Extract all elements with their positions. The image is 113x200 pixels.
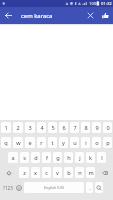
staticText: 01:32 — [101, 1, 112, 7]
staticText: j — [79, 154, 81, 162]
button[interactable]: 4 — [37, 122, 46, 133]
staticText: b — [67, 169, 71, 177]
staticText: cem karaca — [21, 12, 83, 20]
button[interactable]: 5 — [48, 122, 57, 133]
staticText: 4 — [40, 124, 44, 132]
staticText: ?123 — [3, 185, 13, 191]
staticText: x — [34, 169, 37, 177]
button[interactable]: n — [75, 167, 84, 178]
staticText: q — [4, 139, 8, 147]
staticText: p — [106, 139, 110, 147]
button[interactable]: v — [53, 167, 62, 178]
staticText: e — [28, 139, 32, 147]
staticText: 9 — [95, 124, 99, 132]
button[interactable]: w — [13, 137, 23, 148]
staticText: y — [62, 139, 65, 147]
button[interactable]: Emoji — [15, 180, 23, 195]
staticText: d — [34, 154, 38, 162]
staticText: g — [56, 154, 60, 162]
button[interactable]: b — [64, 167, 73, 178]
button[interactable]: o — [92, 137, 101, 148]
staticText: h — [67, 154, 71, 162]
button[interactable]: English (US) — [24, 182, 84, 193]
staticText: v — [56, 169, 59, 177]
button[interactable]: 9 — [92, 122, 101, 133]
staticText: 7 — [73, 124, 77, 132]
button[interactable]: . — [86, 182, 93, 193]
button[interactable]: 6 — [59, 122, 68, 133]
staticText: t — [51, 139, 54, 147]
button[interactable]: c — [42, 167, 51, 178]
staticText: 6 — [62, 124, 66, 132]
staticText: s — [23, 154, 26, 162]
staticText: 5 — [51, 124, 55, 132]
button[interactable]: 3 — [25, 122, 35, 133]
button[interactable]: d — [31, 152, 40, 163]
button[interactable]: k — [86, 152, 95, 163]
button[interactable]: h — [64, 152, 73, 163]
button[interactable]: Shift — [0, 165, 18, 180]
button[interactable]: Voice search — [97, 7, 113, 24]
button[interactable]: Backspace — [96, 165, 113, 180]
staticText: l — [101, 154, 103, 162]
button[interactable]: Clear — [83, 7, 97, 24]
staticText: o — [95, 139, 99, 147]
staticText: u — [73, 139, 77, 147]
button[interactable]: l — [97, 152, 106, 163]
staticText: 2 — [16, 124, 20, 132]
button[interactable]: 8 — [81, 122, 90, 133]
button[interactable]: z — [19, 167, 29, 178]
button[interactable]: t — [48, 137, 57, 148]
staticText: 0 — [106, 124, 110, 132]
button[interactable]: q — [1, 137, 11, 148]
button[interactable]: 0 — [103, 122, 112, 133]
button[interactable]: e — [25, 137, 35, 148]
button[interactable]: s — [20, 152, 29, 163]
staticText: m — [88, 169, 94, 177]
button[interactable]: x — [31, 167, 40, 178]
staticText: a — [11, 154, 15, 162]
button[interactable]: 1 — [1, 122, 11, 133]
staticText: 1 — [4, 124, 8, 132]
button[interactable]: g — [53, 152, 62, 163]
staticText: k — [89, 154, 92, 162]
staticText: c — [45, 169, 48, 177]
button[interactable]: i — [81, 137, 90, 148]
button[interactable]: Symbols — [0, 180, 15, 195]
staticText: z — [23, 169, 26, 177]
staticText: English (US) — [44, 185, 64, 190]
button[interactable]: u — [70, 137, 79, 148]
button[interactable]: y — [59, 137, 68, 148]
button[interactable]: 7 — [70, 122, 79, 133]
staticText: 8 — [84, 124, 88, 132]
staticText: n — [78, 169, 82, 177]
button[interactable]: p — [103, 137, 112, 148]
staticText: i — [85, 139, 87, 147]
staticText: 100 — [89, 1, 97, 7]
button[interactable]: a — [8, 152, 18, 163]
button[interactable]: j — [75, 152, 84, 163]
staticText: 3 — [28, 124, 32, 132]
button[interactable]: f — [42, 152, 51, 163]
staticText: f — [46, 154, 48, 162]
button[interactable]: Back — [0, 7, 16, 24]
button[interactable]: r — [37, 137, 46, 148]
button[interactable]: m — [86, 167, 95, 178]
staticText: r — [40, 139, 43, 147]
staticText: . — [89, 184, 91, 192]
button[interactable]: Search — [95, 182, 103, 193]
button[interactable]: 2 — [13, 122, 23, 133]
staticText: w — [16, 139, 21, 147]
